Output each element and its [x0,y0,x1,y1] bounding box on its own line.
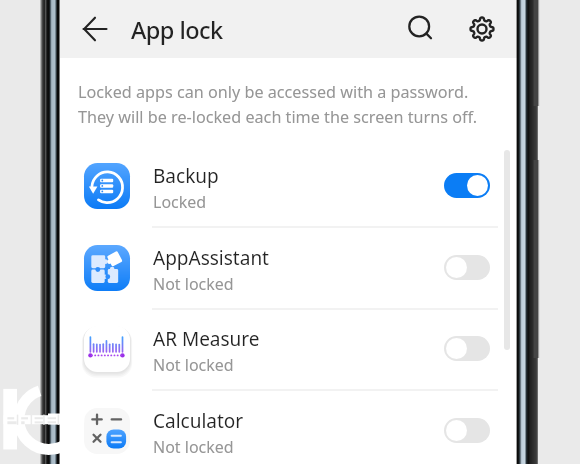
staticText: Calculator [153,408,244,434]
staticText: AppAssistant [153,245,269,271]
button[interactable]: Not locked, off [444,255,490,280]
button[interactable]: Not locked, off [444,418,490,443]
button[interactable]: Calculator [60,390,517,464]
staticText: Locked [153,191,207,213]
button[interactable]: Back [72,6,118,52]
staticText: Locked apps can only be accessed with a … [78,81,469,103]
button[interactable]: Not locked, off [444,336,490,361]
staticText: They will be re-locked each time the scr… [78,106,478,128]
staticText: Not locked [153,273,234,295]
staticText: Not locked [153,436,234,458]
staticText: AR Measure [153,326,260,352]
button[interactable]: AppAssistant [60,227,517,309]
staticText: Backup [153,163,219,189]
staticText: App lock [131,14,223,46]
button[interactable]: Backup [60,145,517,227]
staticText: Not locked [153,354,234,376]
button[interactable]: Settings [459,6,505,52]
button[interactable]: Search [398,6,444,52]
button[interactable]: Locked, on [444,173,490,198]
button[interactable]: AR Measure [60,308,517,390]
